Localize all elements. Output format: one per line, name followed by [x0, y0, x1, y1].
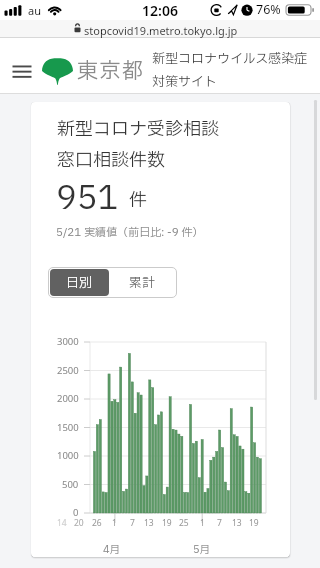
staticText: 14 — [57, 517, 67, 529]
staticText: 窓口相談件数 — [57, 147, 165, 174]
staticText: 951 — [56, 174, 119, 223]
staticText: 1000 — [57, 449, 79, 462]
staticText: 25 — [179, 517, 189, 529]
staticText: au — [28, 3, 41, 18]
staticText: 1500 — [57, 421, 79, 434]
staticText: 19 — [249, 517, 259, 529]
staticText: 1 — [112, 517, 117, 529]
staticText: 5月 — [193, 542, 211, 558]
staticText: 500 — [62, 478, 79, 491]
staticText: 4月 — [103, 542, 121, 558]
staticText: 新型コロナ受診相談 — [57, 116, 219, 143]
staticText: 1 — [200, 517, 205, 529]
staticText: 累計 — [129, 273, 156, 292]
button[interactable]: 累計 — [109, 269, 175, 296]
staticText: 対策サイト — [152, 72, 217, 91]
staticText: 3000 — [57, 335, 79, 348]
staticText: 13 — [232, 517, 242, 529]
staticText: 20 — [74, 517, 84, 529]
staticText: 2000 — [57, 392, 79, 405]
button[interactable]: 日別 — [50, 269, 109, 296]
staticText: 7 — [217, 517, 222, 529]
staticText: 12:06 — [142, 1, 178, 20]
staticText: 76% — [256, 1, 281, 18]
button[interactable] — [8, 62, 36, 82]
staticText: 日別 — [66, 273, 93, 292]
staticText: 26 — [92, 517, 102, 529]
staticText: stopcovid19.metro.tokyo.lg.jp — [84, 23, 238, 38]
staticText: 新型コロナウイルス感染症 — [152, 49, 308, 68]
staticText: 東京都 — [77, 56, 145, 87]
staticText: 7 — [130, 517, 135, 529]
staticText: 0 — [73, 506, 79, 519]
button[interactable] — [0, 20, 320, 38]
staticText: 5/21 実績値（前日比: -9 件） — [56, 224, 204, 241]
staticText: 19 — [162, 517, 172, 529]
staticText: 13 — [144, 517, 154, 529]
staticText: 2500 — [57, 364, 79, 377]
staticText: 件 — [129, 187, 147, 214]
